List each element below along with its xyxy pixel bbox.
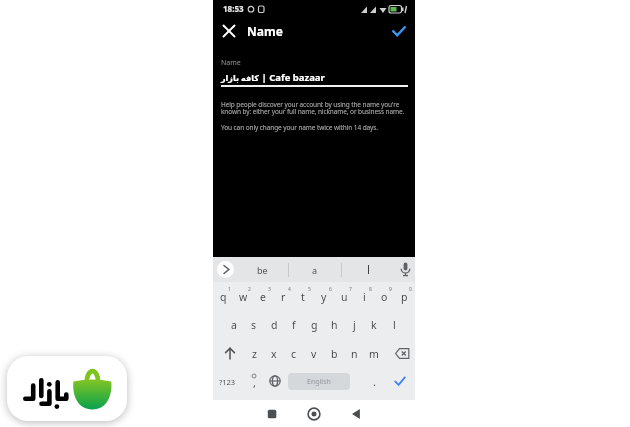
staticText: ?123	[219, 377, 236, 387]
staticText: 9	[389, 286, 392, 293]
staticText: p	[401, 290, 408, 304]
staticText: s	[251, 318, 257, 332]
staticText: Help people discover your account by usi…	[221, 100, 400, 109]
staticText: k	[371, 318, 377, 332]
button[interactable]	[394, 376, 406, 386]
staticText: 2	[248, 286, 251, 293]
staticText: 18:53	[223, 3, 244, 14]
button[interactable]	[395, 348, 410, 359]
staticText: 7	[349, 286, 352, 293]
staticText: d	[271, 318, 278, 332]
staticText: 8	[369, 286, 372, 293]
staticText: r	[281, 290, 286, 304]
staticText: .	[373, 374, 376, 389]
staticText: h	[331, 318, 338, 332]
staticText: i	[363, 290, 366, 304]
button[interactable]	[223, 25, 235, 37]
staticText: known by: either your full name, nicknam…	[221, 107, 405, 116]
staticText: be	[257, 264, 268, 276]
button[interactable]	[400, 262, 411, 277]
staticText: x	[271, 347, 277, 361]
staticText: f	[292, 318, 296, 332]
staticText: You can only change your name twice with…	[221, 123, 378, 132]
staticText: m	[369, 347, 379, 361]
staticText: Name	[247, 23, 283, 39]
staticText: 6	[329, 286, 332, 293]
staticText: j	[353, 318, 356, 332]
staticText: e	[260, 290, 266, 304]
staticText: a	[312, 264, 318, 276]
staticText: q	[220, 290, 227, 304]
staticText: z	[252, 347, 257, 361]
staticText: c	[291, 347, 297, 361]
staticText: l	[393, 318, 396, 332]
staticText: b	[331, 347, 338, 361]
staticText: u	[341, 290, 348, 304]
staticText: 1	[228, 286, 231, 293]
staticText: ,	[253, 375, 256, 390]
button[interactable]: English	[288, 373, 350, 390]
staticText: Name	[221, 58, 241, 68]
button[interactable]	[392, 26, 406, 37]
staticText: 5	[308, 286, 311, 293]
staticText: 4	[288, 286, 291, 293]
staticText: w	[239, 290, 248, 304]
staticText: كافه بازار	[221, 72, 259, 83]
staticText: t	[301, 290, 305, 304]
staticText: a	[231, 318, 237, 332]
staticText: 3	[268, 286, 271, 293]
staticText: o	[381, 290, 388, 304]
staticText: 0	[409, 286, 412, 293]
button[interactable]	[217, 261, 234, 278]
button[interactable]	[269, 375, 281, 387]
staticText: n	[351, 347, 358, 361]
button[interactable]	[224, 347, 236, 360]
staticText: g	[311, 318, 318, 332]
staticText: English	[307, 377, 331, 387]
staticText: y	[321, 290, 327, 304]
staticText: | Cafe bazaar	[259, 71, 325, 84]
button[interactable]	[7, 356, 127, 421]
staticText: v	[311, 347, 317, 361]
